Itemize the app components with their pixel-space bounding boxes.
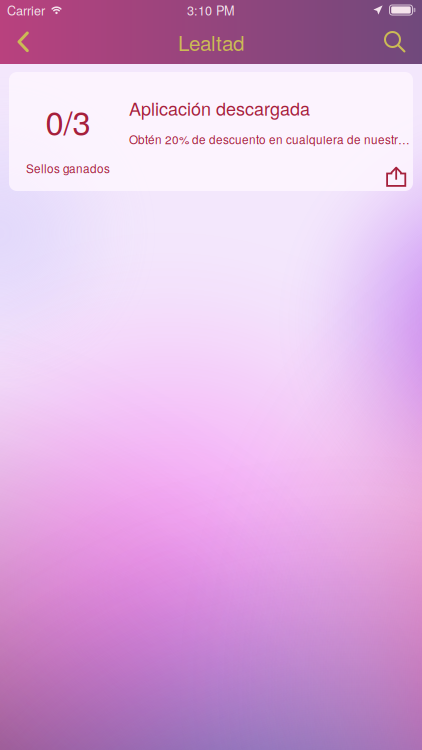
button[interactable]: Search: [362, 20, 422, 64]
staticText: 3:10 PM: [187, 1, 235, 19]
button[interactable]: 0/3: [9, 72, 413, 191]
staticText: Lealtad: [178, 27, 244, 57]
staticText: Sellos ganados: [26, 160, 110, 177]
staticText: Obtén 20% de descuento en cualquiera de …: [129, 131, 410, 148]
button[interactable]: Back: [0, 20, 63, 64]
staticText: 0/3: [45, 98, 90, 145]
staticText: Aplicación descargada: [129, 95, 310, 121]
button[interactable]: Share: [379, 161, 413, 191]
staticText: Carrier: [7, 1, 45, 19]
